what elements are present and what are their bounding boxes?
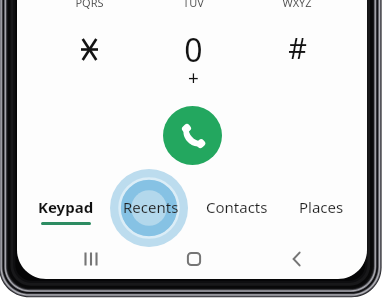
button[interactable]: Home — [168, 236, 220, 282]
button[interactable]: Places — [279, 197, 363, 231]
staticText: WXYZ — [282, 0, 312, 10]
staticText: Contacts — [206, 197, 268, 217]
staticText: Keypad — [38, 197, 94, 217]
staticText: 0 — [184, 28, 203, 72]
button[interactable]: Back — [271, 236, 323, 282]
staticText: Places — [299, 197, 344, 217]
button[interactable]: Keypad — [24, 197, 108, 231]
staticText: + — [188, 65, 199, 91]
button[interactable]: PQRS — [37, 0, 141, 90]
button[interactable]: Recents — [109, 197, 193, 231]
button[interactable]: TUV — [141, 0, 245, 90]
staticText: PQRS — [75, 0, 104, 10]
button[interactable]: WXYZ — [245, 0, 349, 90]
button[interactable]: Call — [163, 106, 222, 165]
button[interactable]: Recent apps — [65, 236, 117, 282]
button[interactable]: Contacts — [195, 197, 279, 231]
staticText: Recents — [123, 197, 179, 217]
staticText: # — [288, 28, 307, 67]
staticText: TUV — [183, 0, 204, 10]
